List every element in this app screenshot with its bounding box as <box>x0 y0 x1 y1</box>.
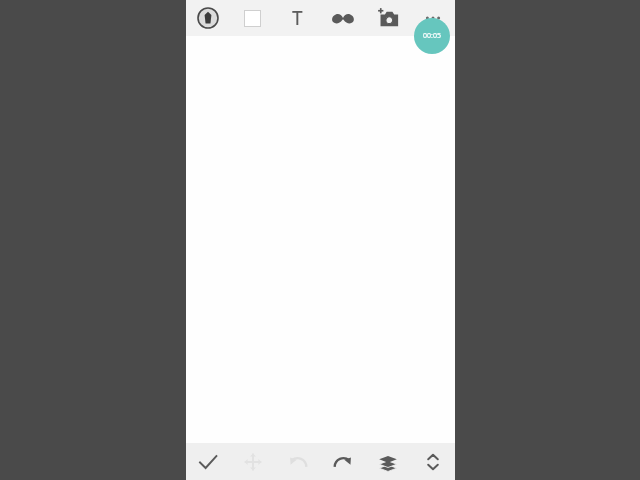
button[interactable]: Text tool <box>275 0 320 36</box>
button[interactable]: More options <box>410 0 455 36</box>
staticText: 00:05 <box>423 31 441 41</box>
button[interactable]: Color <box>230 0 275 36</box>
button[interactable]: Add photo <box>365 0 410 36</box>
button[interactable]: Stickers <box>320 0 365 36</box>
other: Recording timer 00:05 <box>414 18 450 54</box>
button[interactable]: Redo <box>320 443 365 480</box>
button[interactable]: Brush size <box>186 0 230 36</box>
button[interactable]: Done <box>186 443 230 480</box>
button[interactable]: Layers <box>365 443 410 480</box>
staticText: T <box>292 5 303 31</box>
button[interactable]: Reorder <box>410 443 455 480</box>
